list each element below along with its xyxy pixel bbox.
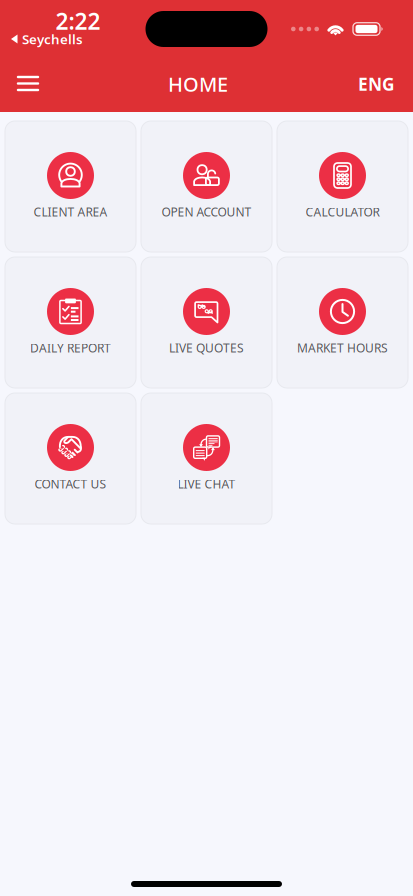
button[interactable]: Menu	[0, 62, 56, 106]
button[interactable]: CONTACT US	[5, 393, 136, 524]
staticText: ENG	[358, 72, 395, 95]
staticText: CALCULATOR	[305, 204, 379, 220]
staticText: DAILY REPORT	[30, 340, 111, 356]
staticText: HOME	[168, 71, 228, 97]
staticText: MARKET HOURS	[297, 340, 388, 356]
button[interactable]: LIVE QUOTES	[141, 257, 272, 388]
button[interactable]: OPEN ACCOUNT	[141, 121, 272, 252]
button[interactable]: CLIENT AREA	[5, 121, 136, 252]
staticText: LIVE CHAT	[177, 476, 235, 492]
staticText: CLIENT AREA	[33, 204, 107, 220]
staticText: Seychells	[22, 30, 83, 48]
button[interactable]: CALCULATOR	[277, 121, 408, 252]
button[interactable]: LIVE CHAT	[141, 393, 272, 524]
staticText: 2:22	[55, 6, 100, 36]
staticText: LIVE QUOTES	[169, 340, 244, 356]
button[interactable]: ENG	[340, 58, 413, 109]
button[interactable]: DAILY REPORT	[5, 257, 136, 388]
staticText: CONTACT US	[34, 476, 106, 492]
staticText: OPEN ACCOUNT	[161, 204, 251, 220]
button[interactable]: MARKET HOURS	[277, 257, 408, 388]
